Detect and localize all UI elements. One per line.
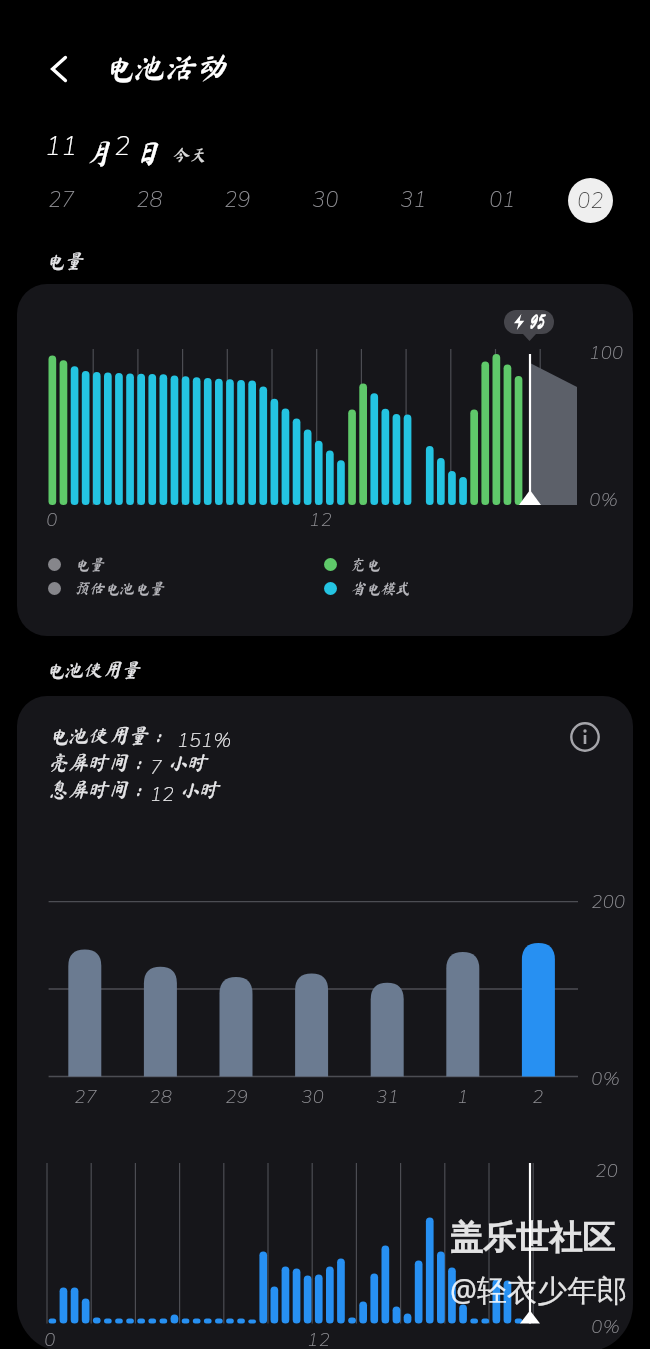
staticText: 28: [149, 1084, 172, 1110]
staticText: 7: [150, 754, 162, 781]
staticText: 151%: [177, 727, 232, 754]
staticText: 01: [489, 185, 516, 215]
staticText: 12: [150, 781, 174, 808]
staticText: 电池使用量：: [48, 725, 168, 745]
button[interactable]: 29: [209, 177, 265, 223]
staticText: 0: [46, 507, 58, 533]
button[interactable]: 电池使用量：: [17, 696, 633, 1349]
staticText: 亮屏时间：: [48, 752, 148, 772]
staticText: 0%: [589, 487, 618, 513]
staticText: 1: [457, 1084, 469, 1110]
staticText: 27: [48, 185, 75, 215]
staticText: 预估电池电量: [74, 581, 165, 596]
button[interactable]: 95: [17, 284, 633, 636]
staticText: 0: [44, 1327, 56, 1349]
staticText: 充电: [350, 557, 381, 572]
staticText: 月: [83, 139, 112, 167]
staticText: 小时: [179, 779, 219, 799]
staticText: 27: [74, 1084, 97, 1110]
staticText: 2: [114, 128, 131, 165]
staticText: 31: [376, 1084, 399, 1110]
staticText: 电量: [74, 557, 105, 572]
staticText: 28: [136, 185, 163, 215]
staticText: 30: [312, 185, 339, 215]
button[interactable]: 27: [33, 177, 89, 223]
staticText: 29: [225, 1084, 248, 1110]
staticText: 12: [309, 507, 332, 533]
staticText: 小时: [167, 752, 207, 772]
button[interactable]: Information: [568, 720, 602, 754]
button[interactable]: 31: [385, 177, 441, 223]
button[interactable]: Back: [38, 48, 80, 90]
staticText: 0%: [591, 1066, 620, 1092]
staticText: 29: [224, 185, 251, 215]
staticText: 11: [45, 128, 78, 165]
staticText: 息屏时间：: [48, 779, 148, 799]
button[interactable]: 02: [562, 177, 618, 223]
button[interactable]: 预估电池电量: [48, 581, 165, 596]
button[interactable]: 充电: [324, 557, 381, 572]
staticText: 12: [307, 1327, 330, 1349]
staticText: 电量: [45, 251, 84, 270]
staticText: 200: [591, 889, 626, 915]
staticText: 日: [133, 139, 162, 167]
staticText: 0%: [591, 1314, 620, 1340]
staticText: @轻衣少年郎: [450, 1269, 627, 1310]
staticText: 31: [400, 185, 427, 215]
staticText: 30: [301, 1084, 324, 1110]
button[interactable]: 30: [297, 177, 353, 223]
staticText: 95: [528, 312, 543, 332]
button[interactable]: 01: [474, 177, 530, 223]
button[interactable]: 28: [121, 177, 177, 223]
staticText: 02: [577, 186, 604, 216]
button[interactable]: 电量: [48, 557, 105, 572]
button[interactable]: 省电模式: [324, 581, 411, 596]
staticText: 电池使用量: [45, 660, 141, 679]
staticText: 今天: [172, 146, 206, 163]
staticText: 100: [589, 340, 624, 366]
staticText: 盖乐世社区: [450, 1217, 615, 1259]
staticText: 20: [595, 1158, 618, 1184]
staticText: 电池活动: [102, 52, 226, 83]
staticText: 省电模式: [350, 581, 411, 596]
staticText: 2: [532, 1084, 544, 1110]
